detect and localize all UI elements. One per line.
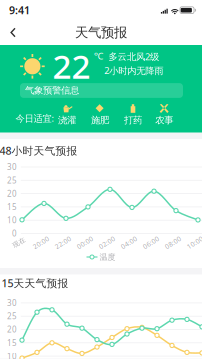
staticText: 北风2级: [127, 50, 159, 63]
staticText: 气象预警信息: [25, 85, 79, 96]
staticText: 0: [12, 228, 17, 239]
staticText: 30: [7, 162, 17, 172]
staticText: 农事: [155, 114, 173, 126]
staticText: 02:00: [98, 238, 116, 247]
staticText: 15天天气预报: [1, 276, 68, 290]
button[interactable]: 打药: [118, 104, 148, 125]
staticText: 施肥: [91, 114, 109, 126]
staticText: 20: [7, 188, 17, 199]
button[interactable]: 施肥: [85, 104, 115, 125]
staticText: 25: [7, 311, 17, 321]
staticText: 06:00: [142, 238, 160, 247]
staticText: 22: [52, 44, 90, 88]
staticText: 今日适宜:: [15, 112, 54, 124]
staticText: 现在: [12, 238, 26, 247]
staticText: 25: [7, 175, 17, 186]
staticText: 08:00: [164, 238, 182, 247]
staticText: 浇灌: [58, 114, 76, 126]
staticText: 温度: [99, 252, 115, 262]
staticText: 9:41: [9, 3, 30, 17]
staticText: 48小时天气预报: [0, 143, 77, 158]
button[interactable]: 浇灌: [52, 104, 82, 125]
staticText: 多云: [108, 51, 126, 62]
staticText: 30: [7, 298, 17, 308]
staticText: 10: [7, 215, 17, 225]
button[interactable]: 农事: [149, 104, 179, 125]
button[interactable]: 气象预警信息: [20, 83, 183, 98]
staticText: 22:00: [54, 238, 72, 247]
staticText: 2小时内无降雨: [104, 64, 163, 77]
staticText: ℃: [94, 50, 103, 62]
staticText: 15: [7, 202, 17, 212]
staticText: 天气预报: [75, 24, 127, 41]
staticText: 15: [7, 337, 17, 348]
button[interactable]: Back: [0, 22, 25, 43]
staticText: 10: [7, 351, 17, 359]
staticText: 00:00: [76, 238, 94, 247]
staticText: 打药: [124, 114, 142, 126]
staticText: 10:00: [186, 238, 202, 247]
staticText: 20:00: [32, 238, 50, 247]
staticText: 04:00: [120, 238, 138, 247]
staticText: 20: [7, 324, 17, 335]
